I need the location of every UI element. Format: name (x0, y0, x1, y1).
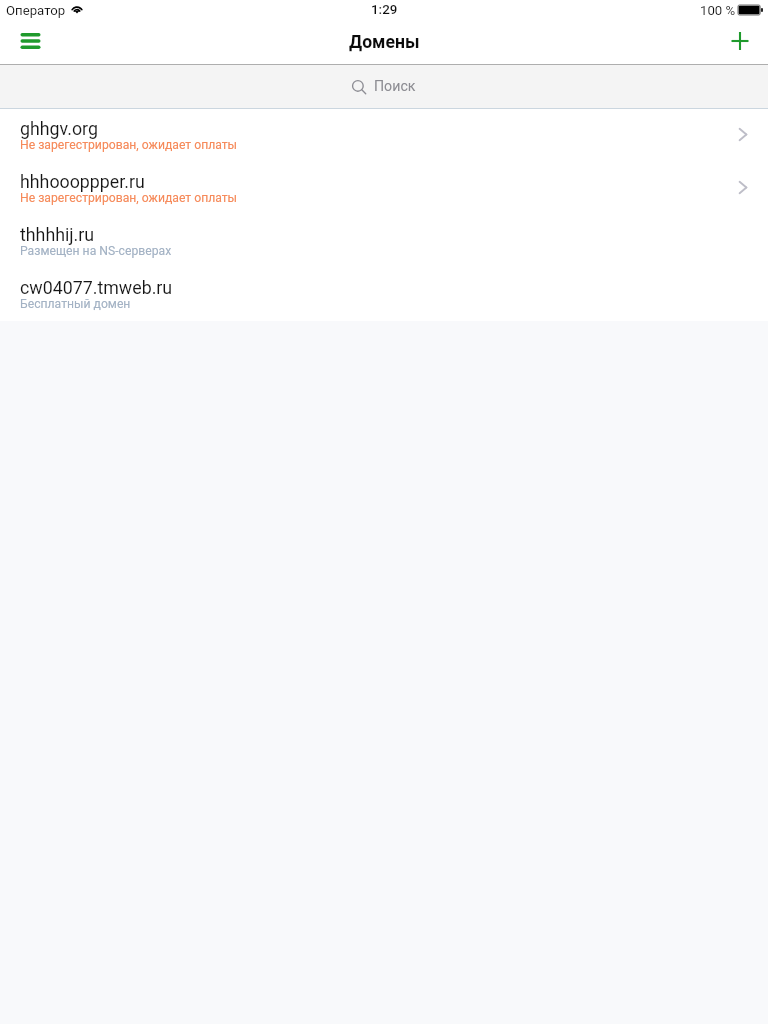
staticText: thhhhij.ru (20, 224, 95, 245)
staticText: cw04077.tmweb.ru (20, 277, 173, 298)
staticText: hhhoooppper.ru (20, 171, 145, 192)
button[interactable]: Add domain (718, 20, 768, 65)
staticText: ghhgv.org (20, 118, 98, 139)
staticText: Размещен на NS-серверах (20, 244, 172, 258)
staticText: Поиск (374, 78, 416, 95)
staticText: Не зарегестрирован, ожидает оплаты (20, 138, 238, 152)
button[interactable]: Menu (0, 20, 50, 65)
staticText: Оператор (6, 3, 66, 18)
staticText: Не зарегестрирован, ожидает оплаты (20, 191, 238, 205)
staticText: 1:29 (371, 2, 398, 18)
staticText: Бесплатный домен (20, 297, 131, 311)
button[interactable]: thhhhij.ru (0, 215, 768, 268)
button[interactable]: hhhoooppper.ru (0, 162, 768, 215)
staticText: Домены (349, 32, 420, 53)
button[interactable]: ghhgv.org (0, 109, 768, 162)
button[interactable]: cw04077.tmweb.ru (0, 268, 768, 321)
staticText: 100 % (700, 3, 736, 18)
